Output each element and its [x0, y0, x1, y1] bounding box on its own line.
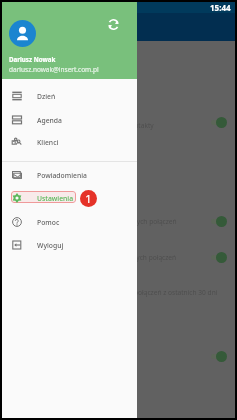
staticText: 15:44 [210, 2, 231, 13]
staticText: Historia połączeń z ostatnich 30 dni [108, 288, 218, 297]
staticText: Wyloguj [37, 241, 64, 250]
button[interactable]: Przełącznik [208, 349, 232, 363]
button[interactable]: Przełącznik [208, 115, 232, 129]
staticText: Powiadomienia [37, 171, 87, 180]
staticText: Pomoc [37, 218, 60, 227]
staticText: Pokazuj listę odebranych połączeń [70, 253, 177, 262]
button[interactable]: Klienci [2, 131, 137, 153]
button[interactable]: Pomoc [2, 211, 137, 233]
button[interactable]: Powiadomienia [2, 164, 137, 186]
staticText: Klienci [37, 138, 59, 147]
staticText: Agenda [37, 116, 62, 125]
staticText: Pokazuj listę nieodebranych połączeń [61, 217, 177, 226]
button[interactable]: Ustawienia [2, 187, 137, 209]
button[interactable]: 1 [80, 190, 97, 207]
staticText: Dariusz Nowak [9, 55, 56, 63]
button[interactable]: Dzień [2, 85, 137, 107]
button[interactable]: Synchronizuj [106, 17, 120, 31]
button[interactable]: Agenda [2, 109, 137, 131]
staticText: Pokazuj kontakty [101, 121, 154, 130]
button[interactable]: Przełącznik [208, 250, 232, 264]
staticText: Dzień [37, 92, 56, 101]
staticText: 1 [85, 191, 92, 206]
button[interactable]: Wyloguj [2, 234, 137, 256]
staticText: Ustawienia [37, 194, 74, 203]
staticText: dariusz.nowak@insert.com.pl [9, 65, 99, 74]
button[interactable]: Przełącznik [208, 214, 232, 228]
